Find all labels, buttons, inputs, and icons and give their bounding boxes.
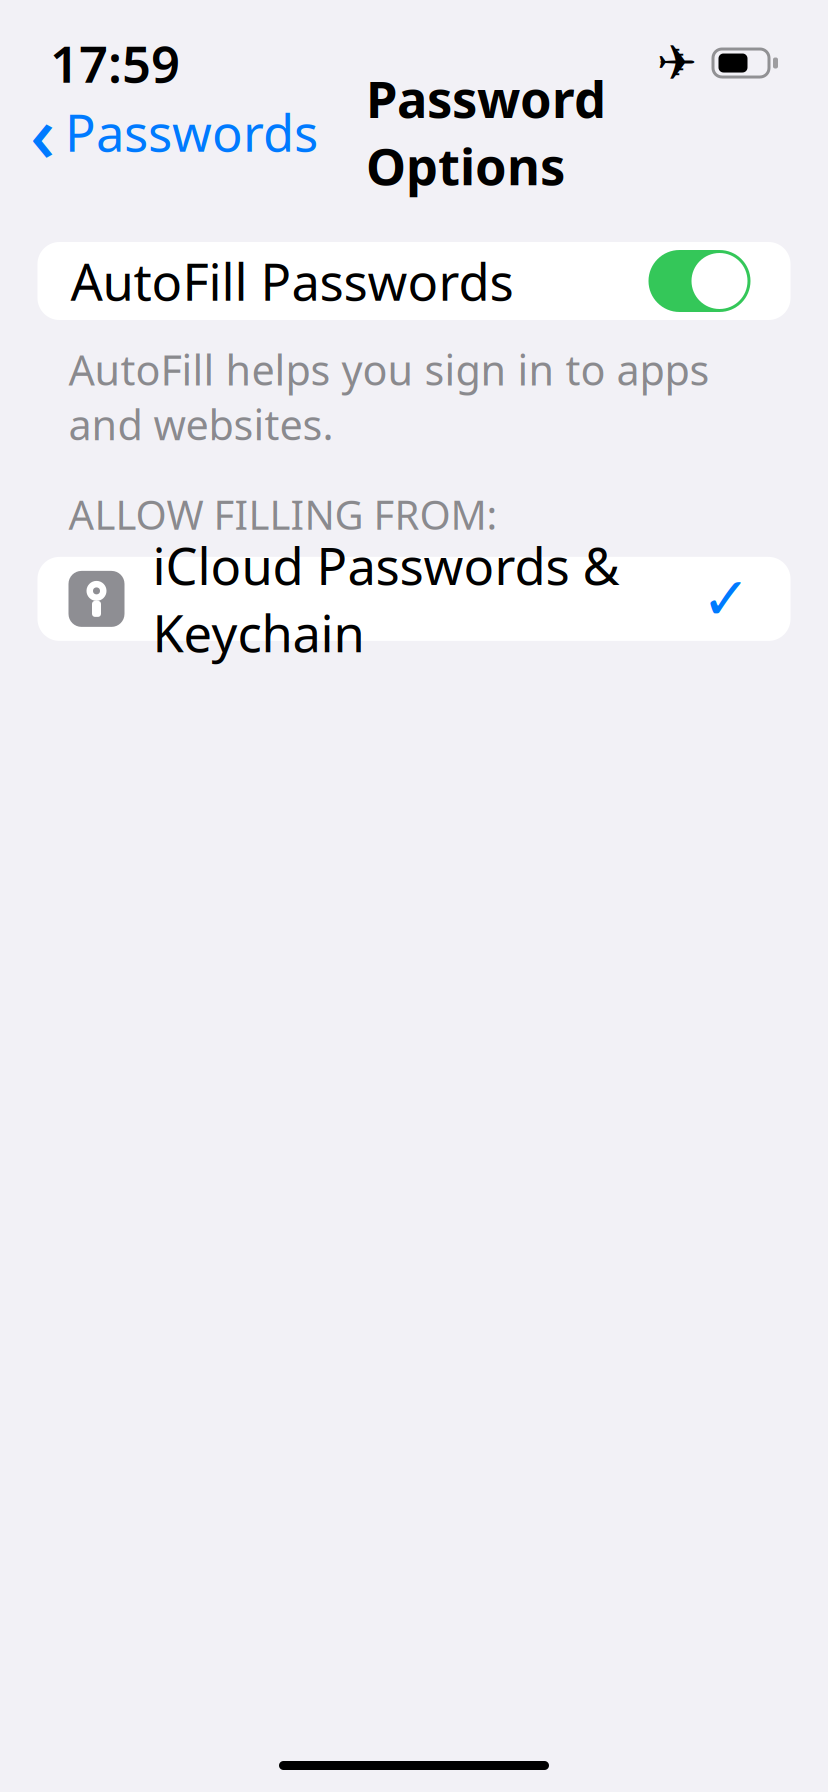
staticText: ✈ [657, 36, 697, 90]
staticText: AutoFill helps you sign in to apps and w… [68, 342, 709, 452]
button[interactable]: AutoFill Passwords [37, 242, 790, 320]
staticText: AutoFill Passwords [70, 247, 513, 315]
staticText: iCloud Passwords & Keychain [152, 532, 619, 666]
staticText: 17:59 [50, 29, 180, 97]
staticText: ‹ [30, 81, 55, 183]
staticText: ALLOW FILLING FROM: [68, 488, 497, 541]
staticText: Passwords [65, 98, 318, 166]
staticText: Password Options [366, 65, 606, 199]
button[interactable]: iCloud Passwords & Keychain [37, 557, 790, 641]
button[interactable]: ‹ [22, 73, 326, 191]
staticText: ✓ [701, 566, 750, 632]
